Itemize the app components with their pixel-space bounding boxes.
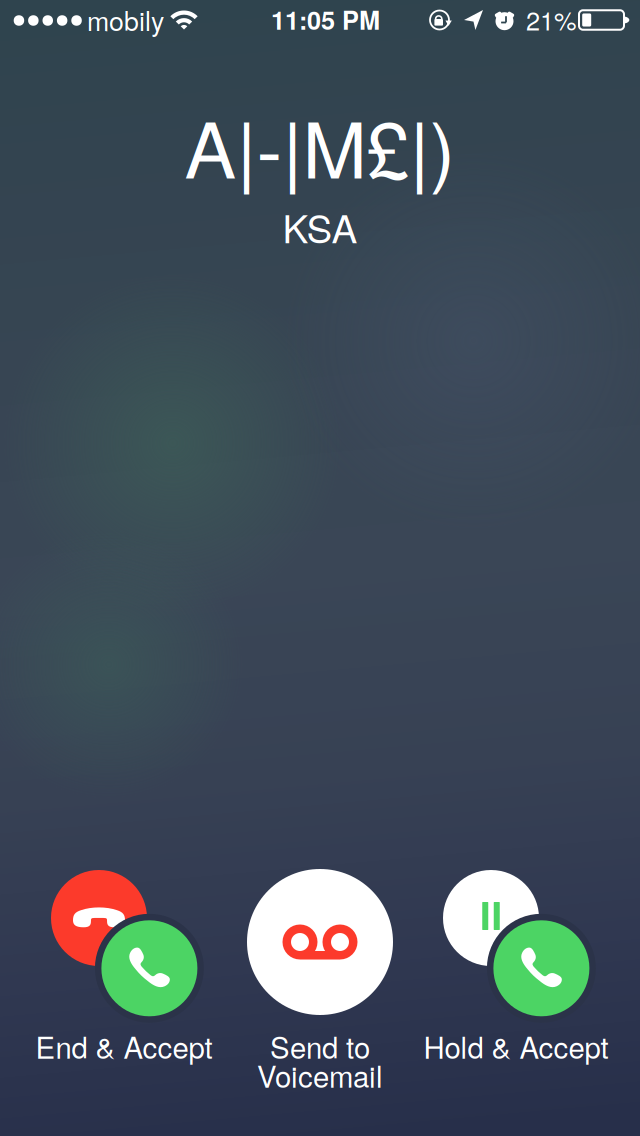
- staticText: End & Accept: [35, 1025, 212, 1067]
- staticText: Send to: [270, 1025, 370, 1067]
- button[interactable]: End & Accept: [24, 855, 224, 1095]
- button[interactable]: Send to: [220, 855, 420, 1095]
- staticText: Voicemail: [257, 1054, 383, 1096]
- staticText: 11:05 PM: [271, 1, 380, 38]
- staticText: 21%: [526, 1, 577, 38]
- staticText: Hold & Accept: [423, 1025, 608, 1067]
- button[interactable]: Hold & Accept: [416, 855, 616, 1095]
- staticText: KSA: [282, 199, 357, 254]
- staticText: mobily: [87, 0, 164, 39]
- staticText: A|-|M£|): [184, 90, 455, 200]
